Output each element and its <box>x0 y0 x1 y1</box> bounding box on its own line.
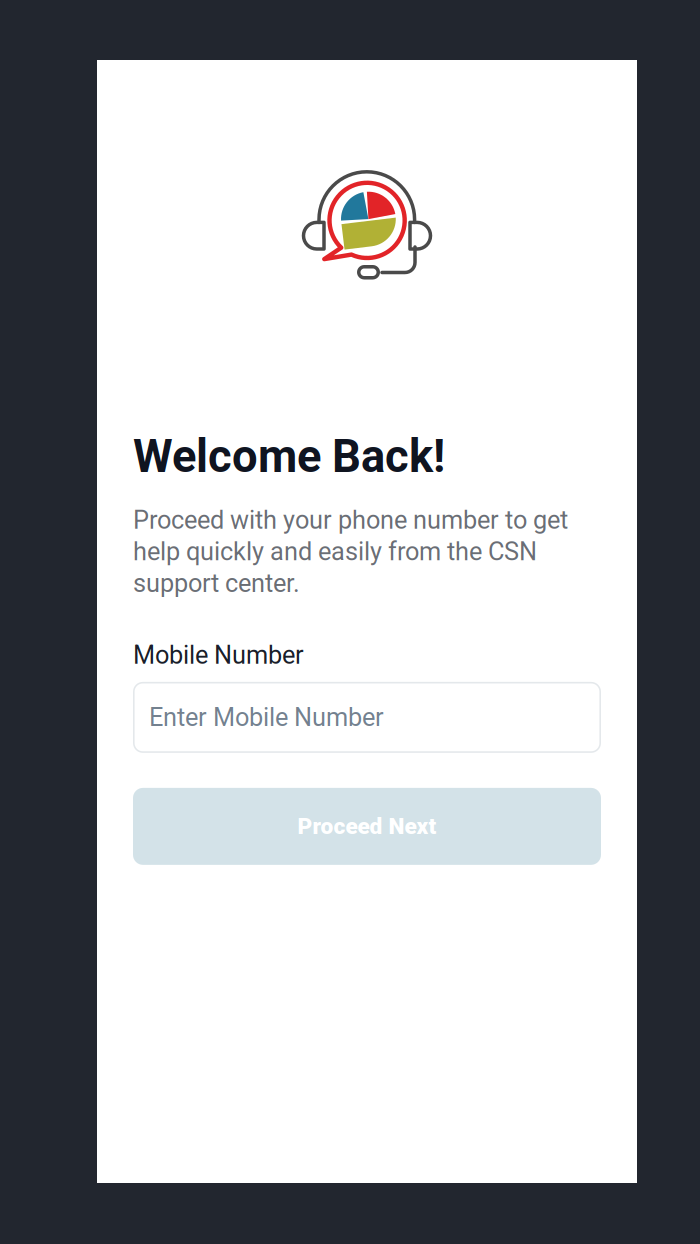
button[interactable]: Enter Mobile Number <box>133 682 601 753</box>
staticText: Proceed with your phone number to get he… <box>133 505 568 598</box>
button[interactable]: Proceed Next <box>133 788 601 865</box>
staticText: Welcome Back! <box>133 430 445 483</box>
staticText: Mobile Number <box>133 640 304 670</box>
staticText: Enter Mobile Number <box>149 702 384 732</box>
staticText: Proceed Next <box>297 813 436 840</box>
